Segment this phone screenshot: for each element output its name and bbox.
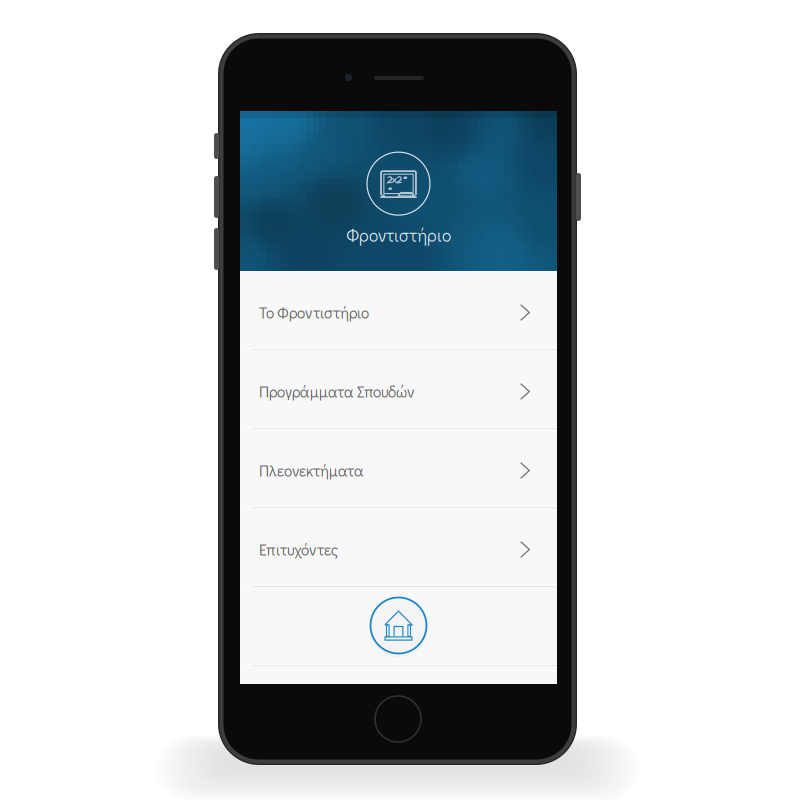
staticText: Επιτυχόντες	[259, 539, 338, 559]
staticText: Το Φροντιστήριο	[259, 302, 369, 322]
button[interactable]: Το Φροντιστήριο	[240, 271, 557, 348]
button[interactable]: Επιτυχόντες	[240, 508, 557, 585]
staticText: Προγράμματα Σπουδών	[259, 381, 415, 401]
staticText: Πλεονεκτήματα	[259, 460, 364, 480]
staticText: Φροντιστήριο	[346, 224, 451, 246]
button[interactable]: Αρχική	[240, 587, 557, 664]
button[interactable]: Προγράμματα Σπουδών	[240, 350, 557, 427]
button[interactable]: Πλεονεκτήματα	[240, 429, 557, 506]
